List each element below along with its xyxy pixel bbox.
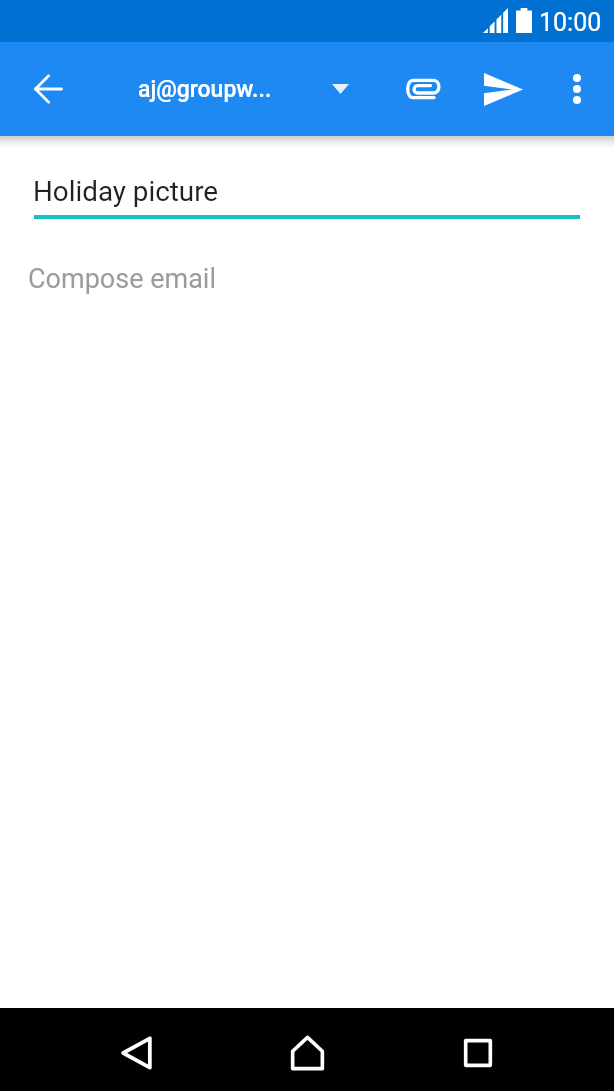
button[interactable]: Send bbox=[470, 42, 536, 136]
button[interactable]: More options bbox=[547, 42, 607, 136]
button[interactable]: Back bbox=[14, 42, 82, 136]
staticText: aj@groupw... bbox=[138, 76, 272, 103]
button[interactable]: Back bbox=[91, 1011, 181, 1091]
button[interactable]: Holiday picture bbox=[0, 160, 614, 224]
staticText: 10:00 bbox=[539, 8, 602, 37]
button[interactable]: Home bbox=[262, 1011, 352, 1091]
staticText: Compose email bbox=[28, 263, 216, 295]
button[interactable]: aj@groupw... bbox=[130, 52, 358, 126]
button[interactable]: Compose email bbox=[0, 240, 614, 1008]
staticText: Holiday picture bbox=[33, 175, 219, 208]
button[interactable]: Attach file bbox=[390, 42, 456, 136]
button[interactable]: Recent apps bbox=[433, 1011, 523, 1091]
